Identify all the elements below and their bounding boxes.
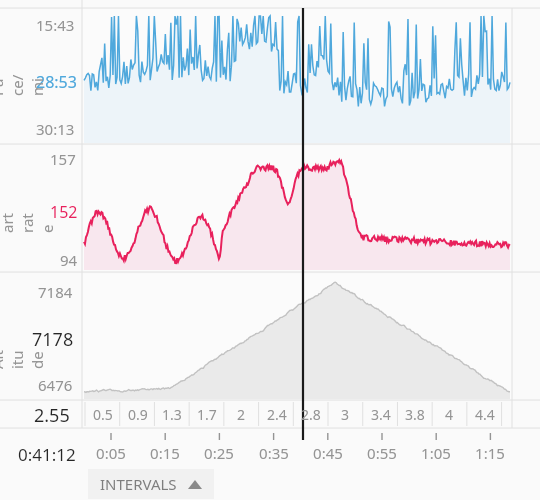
staticText: 7178 — [32, 327, 74, 352]
staticText: 3.8 — [405, 405, 425, 424]
staticText: Heartrate — [0, 211, 57, 233]
staticText: 2.4 — [267, 405, 287, 424]
staticText: 0:35 — [259, 443, 289, 463]
staticText: 0:05 — [96, 443, 126, 463]
button[interactable]: 3.4 — [363, 400, 398, 428]
staticText: 94 — [60, 250, 78, 270]
button[interactable]: 0.9 — [120, 400, 155, 428]
staticText: 1.3 — [162, 405, 182, 424]
staticText: 1:15 — [475, 443, 505, 463]
staticText: 1.7 — [197, 405, 217, 424]
staticText: 0:15 — [150, 443, 180, 463]
staticText: 6476 — [38, 375, 73, 395]
button[interactable]: 4.4 — [467, 400, 502, 428]
staticText: 0:55 — [367, 443, 397, 463]
button[interactable]: INTERVALS — [100, 474, 202, 494]
button[interactable]: 3 — [328, 400, 363, 428]
button[interactable]: 2.8 — [293, 400, 328, 428]
staticText: 0.9 — [128, 405, 148, 424]
staticText: 28:53 — [36, 71, 77, 93]
button[interactable]: 1.7 — [189, 400, 224, 428]
button[interactable]: 2 — [224, 400, 259, 428]
button[interactable]: 4 — [432, 400, 467, 428]
staticText: 1:05 — [421, 443, 451, 463]
button[interactable]: 1.3 — [154, 400, 189, 428]
staticText: 2.55 — [34, 403, 70, 428]
button[interactable]: 0.5 — [85, 400, 120, 428]
staticText: 157 — [50, 149, 76, 169]
staticText: INTERVALS — [100, 474, 177, 494]
staticText: 0:25 — [204, 443, 234, 463]
staticText: 152 — [50, 201, 78, 223]
staticText: 2.8 — [301, 405, 321, 424]
staticText: Pace/mi — [0, 74, 47, 96]
staticText: 3.4 — [371, 405, 391, 424]
button[interactable]: 2.4 — [259, 400, 294, 428]
staticText: 0:41:12 — [18, 443, 76, 466]
staticText: 2 — [237, 405, 246, 424]
staticText: 15:43 — [36, 15, 75, 35]
staticText: Altitude — [0, 347, 47, 369]
staticText: 3 — [341, 405, 350, 424]
button[interactable]: 3.8 — [397, 400, 432, 428]
staticText: 30:13 — [36, 119, 75, 139]
staticText: 0.5 — [93, 405, 113, 424]
other: Collapse intervals — [188, 480, 202, 489]
staticText: 4.4 — [475, 405, 495, 424]
staticText: 0:45 — [313, 443, 343, 463]
staticText: 7184 — [38, 282, 73, 302]
staticText: 4 — [445, 405, 454, 424]
